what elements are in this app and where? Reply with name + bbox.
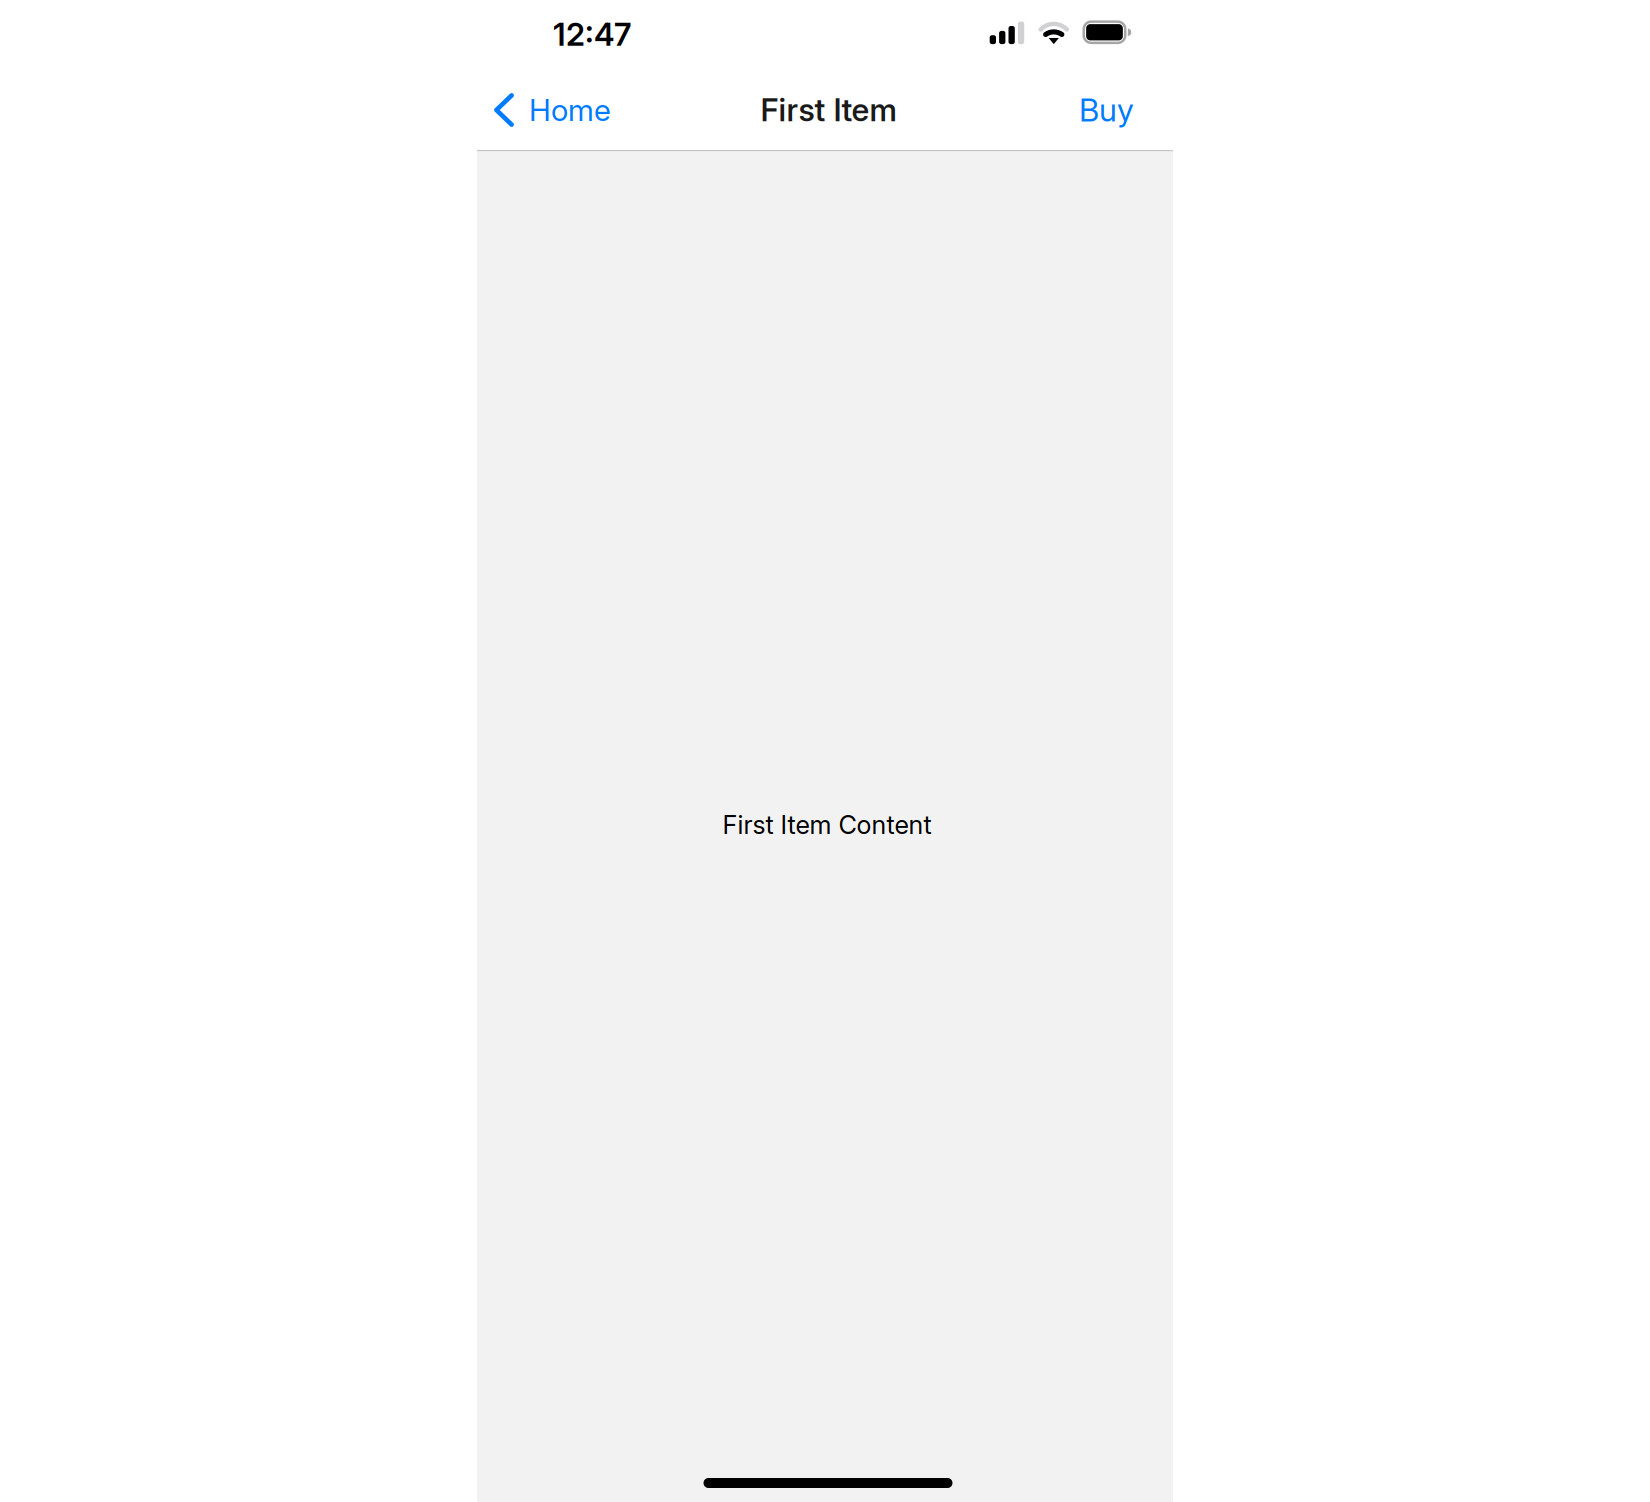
staticText: First Item: [760, 91, 896, 129]
button[interactable]: Buy: [1067, 75, 1134, 145]
button[interactable]: Back to Home: [494, 76, 621, 144]
staticText: First Item Content: [722, 809, 931, 840]
staticText: Buy: [1079, 91, 1134, 129]
staticText: 12:47: [553, 15, 631, 53]
staticText: Home: [529, 92, 611, 128]
